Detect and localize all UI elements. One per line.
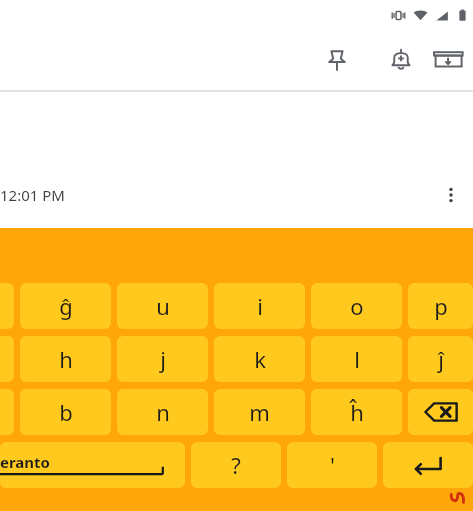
- button[interactable]: j: [117, 336, 208, 382]
- staticText: p: [434, 291, 448, 321]
- button[interactable]: Backspace: [408, 389, 473, 435]
- button[interactable]: Add reminder: [369, 30, 433, 90]
- staticText: h: [59, 344, 73, 374]
- staticText: k: [254, 344, 266, 374]
- button[interactable]: ĝ: [20, 283, 111, 329]
- staticText: ĥ: [350, 397, 364, 427]
- button[interactable]: h: [20, 336, 111, 382]
- button[interactable]: ': [287, 442, 377, 488]
- staticText: u: [156, 291, 170, 321]
- button[interactable]: l: [311, 336, 402, 382]
- staticText: j: [160, 344, 166, 374]
- button[interactable]: b: [20, 389, 111, 435]
- button[interactable]: k: [214, 336, 305, 382]
- button[interactable]: Key: [0, 336, 14, 382]
- button[interactable]: m: [214, 389, 305, 435]
- staticText: b: [59, 397, 73, 427]
- button[interactable]: i: [214, 283, 305, 329]
- staticText: ĝ: [59, 291, 73, 321]
- button[interactable]: Key: [0, 389, 14, 435]
- button[interactable]: Enter: [383, 442, 473, 488]
- staticText: ': [330, 450, 335, 480]
- staticText: o: [350, 291, 364, 321]
- button[interactable]: p: [408, 283, 473, 329]
- button[interactable]: ?: [191, 442, 281, 488]
- button[interactable]: o: [311, 283, 402, 329]
- staticText: l: [354, 344, 360, 374]
- staticText: n: [156, 397, 170, 427]
- button[interactable]: Archive: [433, 30, 473, 90]
- staticText: 12:01 PM: [0, 185, 65, 205]
- staticText: eranto: [0, 452, 50, 472]
- staticText: m: [249, 397, 270, 427]
- staticText: ?: [231, 450, 241, 480]
- button[interactable]: ĥ: [311, 389, 402, 435]
- staticText: i: [257, 291, 263, 321]
- button[interactable]: More options: [429, 169, 473, 221]
- button[interactable]: Space: [0, 442, 185, 488]
- button[interactable]: n: [117, 389, 208, 435]
- button[interactable]: ĵ: [408, 336, 473, 382]
- staticText: ĵ: [438, 344, 444, 374]
- button[interactable]: u: [117, 283, 208, 329]
- button[interactable]: Pin: [305, 30, 369, 90]
- button[interactable]: Key: [0, 283, 14, 329]
